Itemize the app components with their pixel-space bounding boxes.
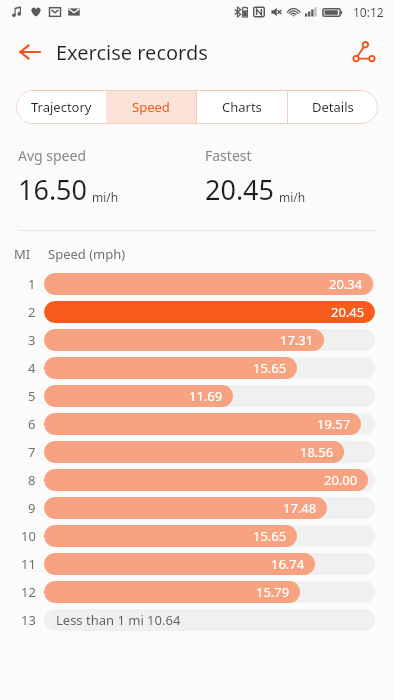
- staticText: 3: [28, 331, 36, 349]
- staticText: 18.56: [300, 443, 334, 461]
- button[interactable]: 3: [0, 329, 394, 351]
- button[interactable]: 6: [0, 413, 394, 435]
- button[interactable]: 11: [0, 553, 394, 575]
- staticText: 15.79: [256, 583, 290, 601]
- staticText: Charts: [222, 98, 262, 116]
- staticText: 11: [21, 555, 36, 573]
- button[interactable]: Speed: [106, 90, 196, 124]
- staticText: 17.48: [283, 499, 317, 517]
- button[interactable]: 2: [0, 301, 394, 323]
- staticText: 7: [28, 443, 36, 461]
- staticText: 6: [28, 415, 36, 433]
- staticText: 19.57: [317, 415, 351, 433]
- staticText: Less than 1 mi 10.64: [56, 611, 181, 629]
- staticText: Avg speed: [18, 146, 87, 165]
- staticText: 20.45: [331, 303, 365, 321]
- staticText: Exercise records: [56, 39, 208, 66]
- staticText: 12: [21, 583, 36, 601]
- button[interactable]: 1: [0, 273, 394, 295]
- button[interactable]: 9: [0, 497, 394, 519]
- button[interactable]: Share: [342, 30, 386, 74]
- staticText: 10: [21, 527, 36, 545]
- staticText: 17.31: [280, 331, 314, 349]
- button[interactable]: 5: [0, 385, 394, 407]
- staticText: Trajectory: [31, 98, 92, 116]
- button[interactable]: Trajectory: [16, 90, 106, 124]
- staticText: 16.50: [18, 171, 88, 208]
- staticText: 16.74: [271, 555, 305, 573]
- button[interactable]: 12: [0, 581, 394, 603]
- staticText: 13: [21, 611, 36, 629]
- button[interactable]: 7: [0, 441, 394, 463]
- staticText: MI: [14, 245, 31, 263]
- staticText: 8: [28, 471, 36, 489]
- staticText: mi/h: [92, 189, 119, 205]
- button[interactable]: 10: [0, 525, 394, 547]
- staticText: 10:12: [353, 4, 384, 20]
- staticText: Speed (mph): [48, 245, 126, 263]
- staticText: 20.00: [324, 471, 358, 489]
- staticText: 15.65: [253, 359, 287, 377]
- staticText: 1: [28, 275, 36, 293]
- staticText: 11.69: [189, 387, 223, 405]
- staticText: 9: [28, 499, 36, 517]
- button[interactable]: 4: [0, 357, 394, 379]
- staticText: Fastest: [205, 146, 252, 165]
- staticText: 2: [28, 303, 36, 321]
- staticText: 5: [28, 387, 36, 405]
- staticText: 4: [28, 359, 36, 377]
- staticText: mi/h: [279, 189, 306, 205]
- button[interactable]: 8: [0, 469, 394, 491]
- staticText: 15.65: [253, 527, 287, 545]
- staticText: 20.34: [329, 275, 363, 293]
- staticText: Details: [312, 98, 354, 116]
- button[interactable]: Back: [8, 30, 52, 74]
- button[interactable]: Details: [287, 90, 378, 124]
- button[interactable]: 13: [0, 609, 394, 631]
- staticText: Speed: [132, 98, 170, 116]
- staticText: 20.45: [205, 171, 275, 208]
- button[interactable]: Charts: [196, 90, 287, 124]
